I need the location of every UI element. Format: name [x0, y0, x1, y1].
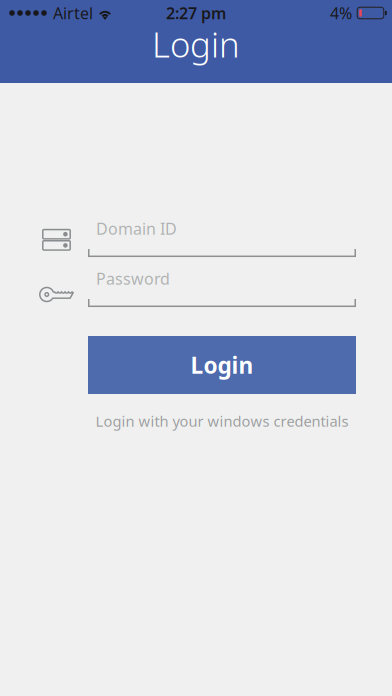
button[interactable]: Domain ID — [88, 218, 356, 257]
staticText: 4% — [330, 2, 352, 24]
staticText: Airtel — [53, 2, 93, 24]
staticText: 2:27 pm — [166, 2, 226, 24]
button[interactable]: Password — [88, 268, 356, 307]
button[interactable]: Login — [88, 336, 356, 394]
staticText: Password — [96, 268, 170, 289]
staticText: Login — [152, 21, 240, 67]
staticText: Login with your windows credentials — [95, 411, 348, 431]
staticText: Login — [190, 350, 253, 380]
staticText: Domain ID — [96, 218, 177, 239]
